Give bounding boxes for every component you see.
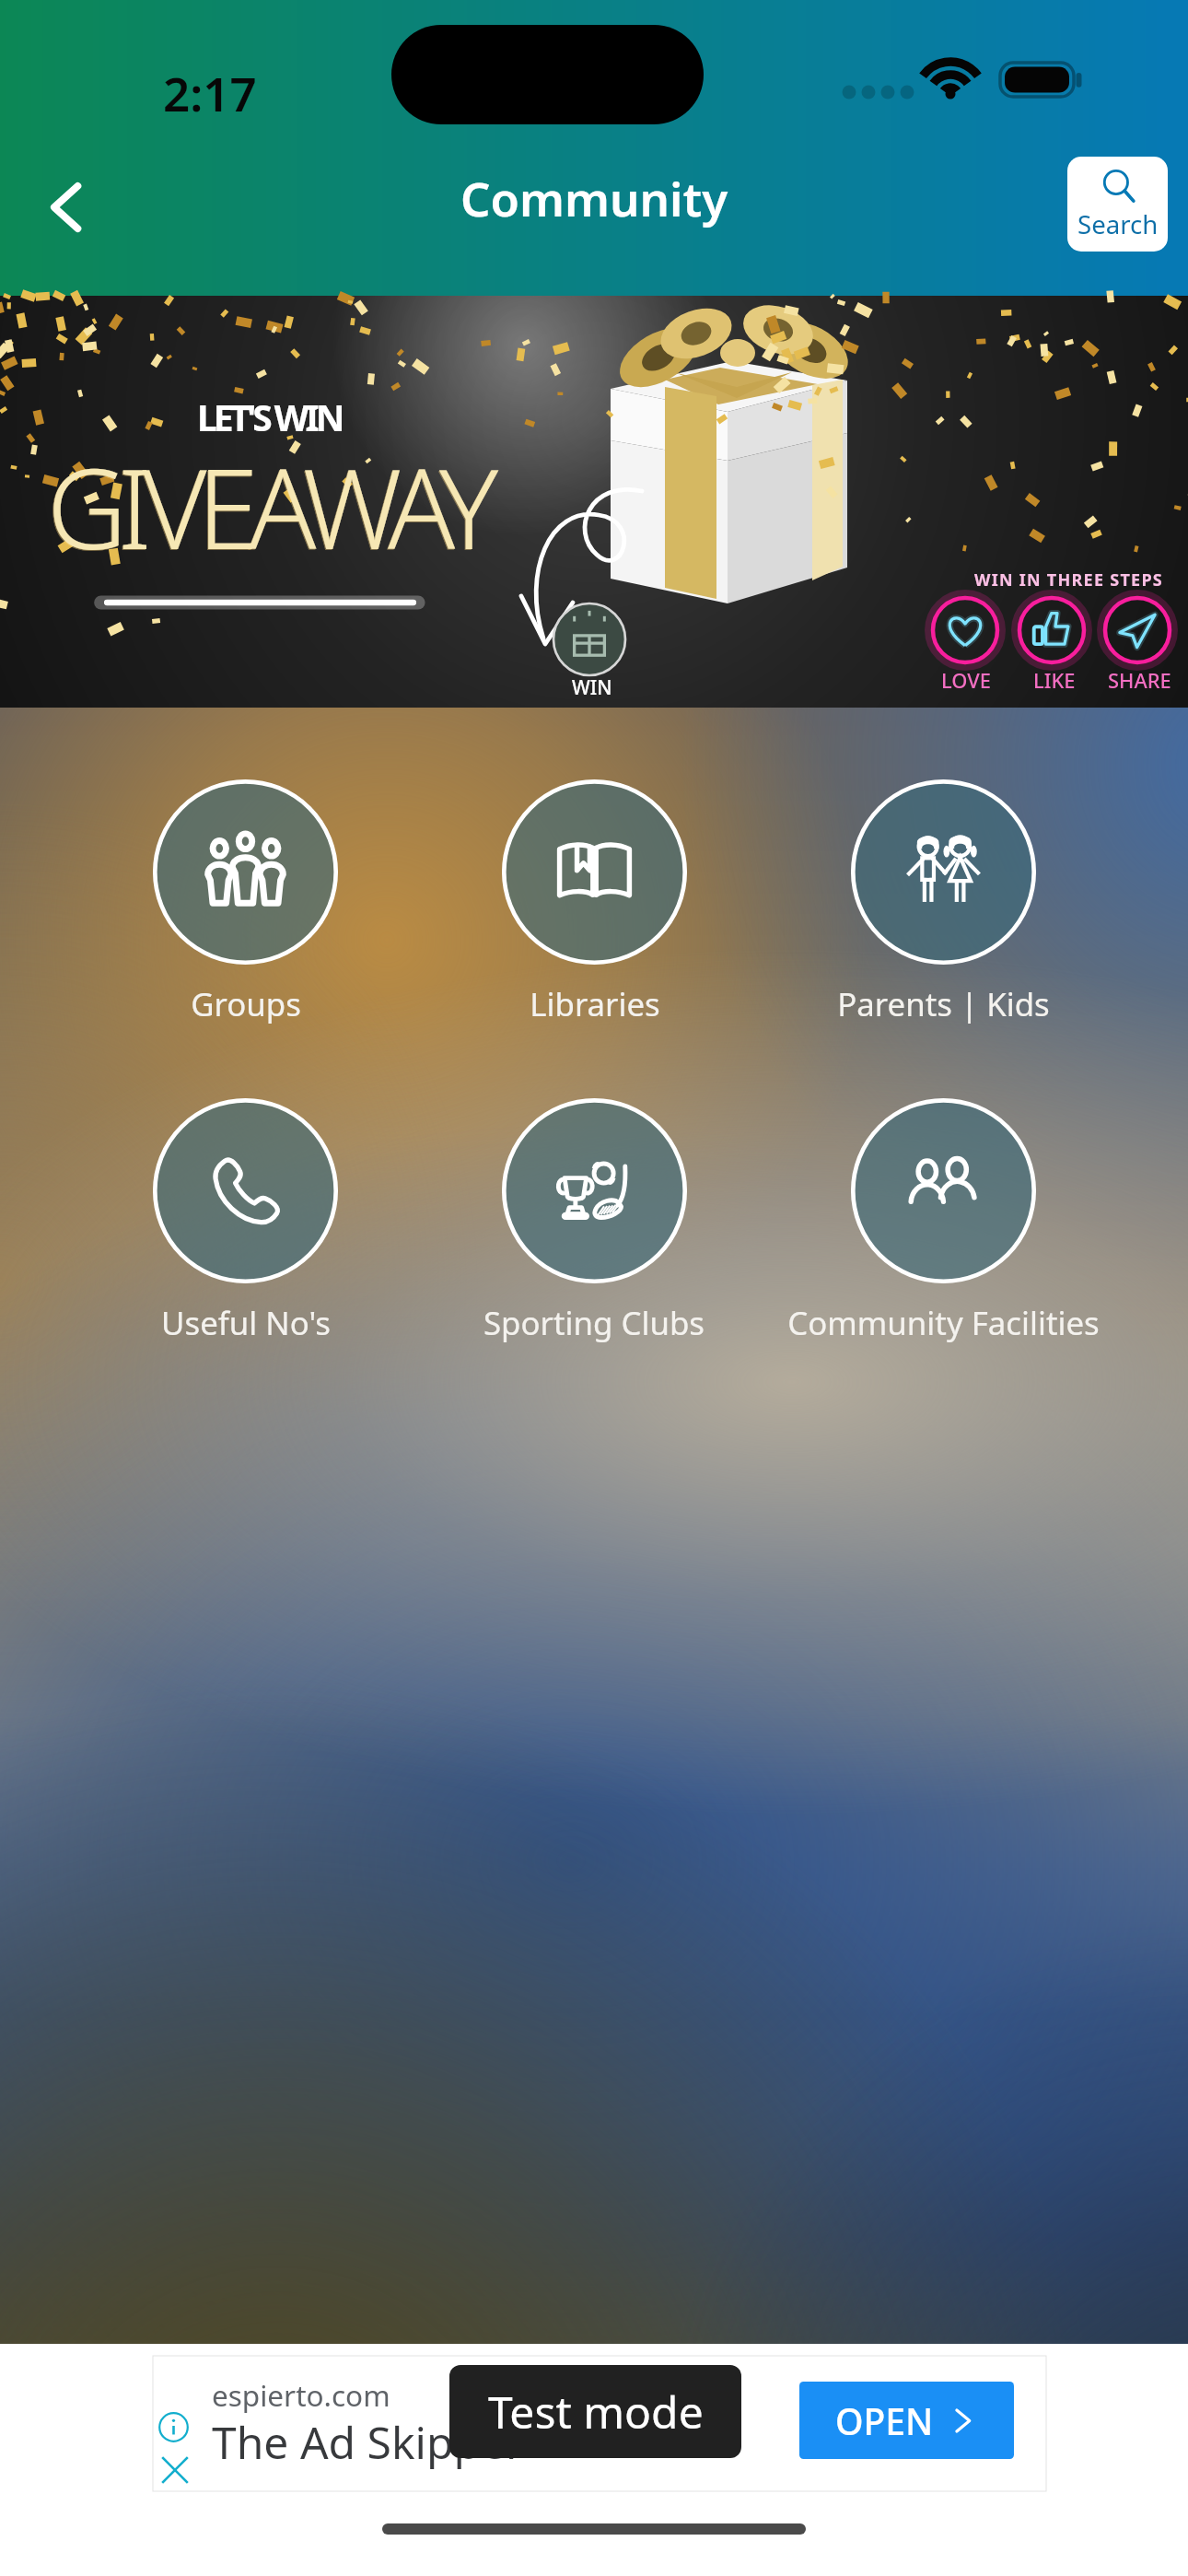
button[interactable]: Community Facilities [722, 1097, 1164, 1344]
button[interactable]: Parents | Kids [722, 779, 1164, 1025]
staticText: Groups [191, 982, 301, 1025]
staticText: Sporting Clubs [483, 1301, 705, 1344]
button[interactable]: Sporting Clubs [373, 1097, 815, 1344]
button[interactable]: Useful No's [24, 1097, 466, 1344]
staticText: OPEN [835, 2396, 934, 2445]
staticText: Search [1077, 206, 1159, 241]
staticText: LET'S WIN [197, 392, 342, 441]
staticText: WIN [572, 674, 612, 701]
button[interactable]: Groups [24, 779, 466, 1025]
staticText: WIN IN THREE STEPS [974, 568, 1164, 591]
button[interactable]: OPEN [799, 2382, 1014, 2459]
staticText: GIVEAWAY [47, 431, 489, 581]
staticText: GIVEAWAY [46, 432, 488, 582]
staticText: Test mode [488, 2382, 704, 2441]
button[interactable]: Ad info [158, 2412, 189, 2442]
staticText: SHARE [1108, 667, 1171, 695]
staticText: Community [460, 166, 728, 229]
staticText: Community Facilities [787, 1301, 1100, 1344]
button[interactable]: Ad info [153, 2356, 1046, 2491]
staticText: Parents | Kids [837, 982, 1050, 1025]
button[interactable]: Back [19, 159, 111, 255]
button[interactable]: Libraries [373, 779, 815, 1025]
staticText: LOVE [941, 667, 991, 695]
staticText: Useful No's [161, 1301, 331, 1344]
button[interactable]: Search [1067, 157, 1168, 252]
staticText: The Ad Skipper [212, 2412, 524, 2472]
staticText: Libraries [530, 982, 660, 1025]
staticText: 2:17 [163, 61, 257, 124]
button[interactable]: Close ad [161, 2456, 189, 2484]
button[interactable]: Giveaway banner [0, 296, 1188, 708]
staticText: LIKE [1033, 667, 1076, 695]
staticText: espierto.com [212, 2375, 390, 2415]
